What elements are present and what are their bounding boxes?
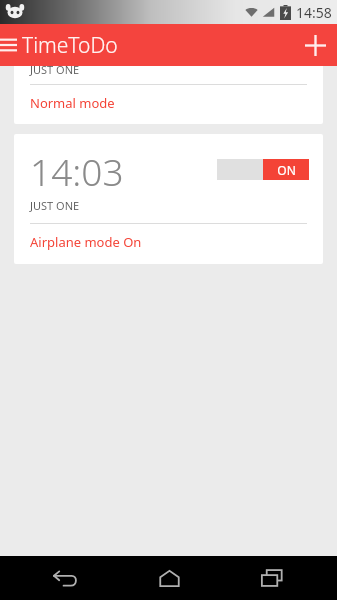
staticText: JUST ONE xyxy=(30,198,80,213)
button[interactable]: 14:03 xyxy=(14,134,323,264)
staticText: ON xyxy=(277,162,296,178)
button[interactable]: Alarm enabled toggle xyxy=(217,159,309,180)
button[interactable]: Recent apps xyxy=(233,556,311,600)
staticText: 14:58 xyxy=(296,3,332,22)
button[interactable]: Home xyxy=(130,556,208,600)
button[interactable]: Add alarm xyxy=(293,24,337,66)
staticText: 14:03 xyxy=(30,146,124,196)
staticText: JUST ONE xyxy=(30,62,80,77)
button[interactable]: Open navigation menu xyxy=(0,24,26,66)
button[interactable]: Back xyxy=(26,556,104,600)
staticText: Airplane mode On xyxy=(30,233,142,251)
staticText: TimeToDo xyxy=(22,31,118,60)
button[interactable]: JUST ONE xyxy=(14,48,323,124)
staticText: Normal mode xyxy=(30,94,115,112)
